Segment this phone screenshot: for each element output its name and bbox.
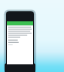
button[interactable]: App bar	[7, 21, 33, 25]
